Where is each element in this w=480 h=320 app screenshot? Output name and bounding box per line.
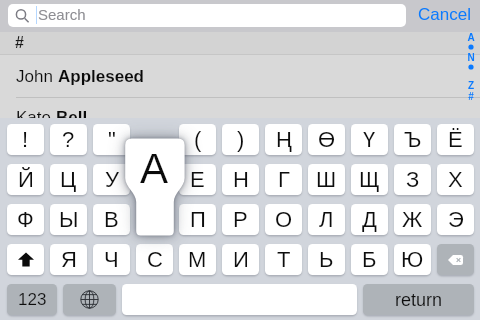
button[interactable]: Б [351, 244, 388, 278]
staticText: Ө [318, 127, 336, 152]
button[interactable]: return [363, 284, 474, 318]
staticText: Н [233, 167, 249, 192]
staticText: Х [448, 167, 463, 192]
staticText: John [16, 67, 58, 86]
staticText: Б [362, 247, 377, 272]
button[interactable]: П [179, 204, 216, 238]
staticText: Ч [104, 247, 119, 272]
button[interactable]: Ч [93, 244, 130, 278]
staticText: Kate [16, 108, 56, 127]
button[interactable]: Ы [50, 204, 87, 238]
staticText: В [104, 207, 119, 232]
staticText: # [463, 91, 479, 102]
button[interactable]: Й [7, 164, 44, 198]
staticText: Ф [17, 207, 34, 232]
button[interactable]: ! [7, 124, 44, 158]
button[interactable]: ( [179, 124, 216, 158]
button[interactable]: Ю [394, 244, 431, 278]
button[interactable]: Н [222, 164, 259, 198]
staticText: Э [448, 207, 464, 232]
button[interactable]: М [179, 244, 216, 278]
button[interactable]: " [93, 124, 130, 158]
staticText: У [105, 167, 119, 192]
button[interactable]: З [394, 164, 431, 198]
staticText: Р [233, 207, 248, 232]
staticText: И [233, 247, 249, 272]
button[interactable]: Shift [7, 244, 44, 278]
button[interactable]: Ё [437, 124, 474, 158]
button[interactable]: Ө [308, 124, 345, 158]
staticText: ) [237, 127, 245, 152]
staticText: П [190, 207, 206, 232]
button[interactable]: С [136, 244, 173, 278]
button[interactable]: Х [437, 164, 474, 198]
staticText: Т [277, 247, 291, 272]
button[interactable]: ) [222, 124, 259, 158]
button[interactable]: Ү [351, 124, 388, 158]
button[interactable]: John [0, 55, 480, 97]
staticText: Ъ [404, 127, 422, 152]
button[interactable]: Switch keyboard [63, 284, 116, 318]
button[interactable]: 123 [7, 284, 57, 318]
staticText: Z [463, 80, 479, 91]
staticText: ! [22, 127, 29, 152]
button[interactable]: Э [437, 204, 474, 238]
button[interactable]: Е [179, 164, 216, 198]
button[interactable]: Т [265, 244, 302, 278]
staticText: Л [319, 207, 334, 232]
staticText: М [188, 247, 207, 272]
button[interactable]: Ц [50, 164, 87, 198]
staticText: Appleseed [58, 67, 144, 86]
staticText: С [147, 247, 163, 272]
staticText: Я [61, 247, 77, 272]
staticText: О [275, 207, 293, 232]
button[interactable]: Ъ [394, 124, 431, 158]
staticText: " [108, 127, 116, 152]
button[interactable]: В [93, 204, 130, 238]
staticText: Bell [56, 108, 88, 127]
staticText: Й [18, 167, 34, 192]
button[interactable]: Backspace [437, 244, 474, 278]
staticText: Ш [316, 167, 337, 192]
button[interactable]: Ң [265, 124, 302, 158]
button[interactable]: Л [308, 204, 345, 238]
button[interactable]: Search [8, 4, 406, 27]
staticText: А [112, 145, 196, 192]
button[interactable]: Space [122, 284, 357, 318]
button[interactable]: И [222, 244, 259, 278]
button[interactable]: У [93, 164, 130, 198]
staticText: 123 [18, 290, 47, 309]
staticText: Ё [448, 127, 463, 152]
button[interactable]: Д [351, 204, 388, 238]
button[interactable]: Ф [7, 204, 44, 238]
button[interactable]: ? [50, 124, 87, 158]
staticText: Ц [60, 167, 77, 192]
button[interactable]: Ь [308, 244, 345, 278]
staticText: N [463, 52, 479, 63]
staticText: ? [62, 127, 75, 152]
staticText: З [406, 167, 420, 192]
staticText: Search [38, 6, 86, 23]
button[interactable]: Cancel [418, 5, 471, 24]
button[interactable]: Я [50, 244, 87, 278]
staticText: Ү [363, 127, 376, 152]
staticText: Щ [359, 167, 380, 192]
staticText: ( [194, 127, 202, 152]
staticText: Д [362, 207, 377, 232]
button[interactable]: Ж [394, 204, 431, 238]
button[interactable]: Р [222, 204, 259, 238]
button[interactable]: Щ [351, 164, 388, 198]
button[interactable]: Kate [0, 96, 480, 138]
staticText: return [395, 290, 443, 310]
button[interactable]: Г [265, 164, 302, 198]
button[interactable]: Ш [308, 164, 345, 198]
staticText: Ж [402, 207, 423, 232]
staticText: # [15, 34, 24, 52]
staticText: Ь [319, 247, 334, 272]
staticText: Г [278, 167, 290, 192]
staticText: A [463, 32, 479, 43]
staticText: Ю [401, 247, 424, 272]
staticText: Ы [59, 207, 79, 232]
button[interactable]: О [265, 204, 302, 238]
button[interactable]: # [0, 32, 480, 54]
